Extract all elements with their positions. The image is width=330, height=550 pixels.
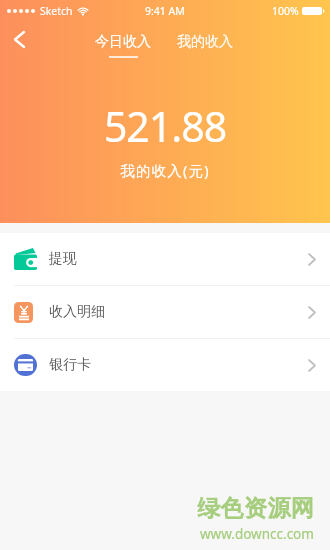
staticText: 银行卡 (49, 356, 91, 374)
staticText: Sketch (40, 4, 73, 18)
staticText: www.downcc.com (200, 525, 314, 543)
button[interactable]: 提现 (0, 233, 330, 285)
staticText: 521.88 (0, 98, 330, 154)
staticText: 我的收入 (177, 33, 233, 51)
staticText: 绿色资源网 (197, 494, 314, 523)
staticText: 今日收入 (95, 33, 151, 51)
button[interactable]: 我的收入 (169, 33, 241, 51)
staticText: 我的收入(元) (0, 160, 330, 180)
button[interactable]: Back (2, 22, 36, 56)
staticText: 100% (272, 4, 299, 18)
staticText: 9:41 AM (145, 4, 185, 18)
staticText: 收入明细 (49, 303, 105, 321)
button[interactable]: 今日收入 (87, 33, 159, 58)
button[interactable]: 收入明细 (0, 286, 330, 338)
staticText: 提现 (49, 250, 77, 268)
button[interactable]: 银行卡 (0, 339, 330, 391)
